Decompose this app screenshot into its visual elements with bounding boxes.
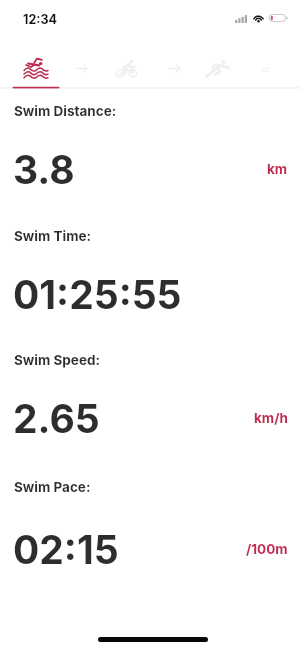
staticText: km/h (254, 410, 288, 426)
staticText: 3.8 (13, 146, 75, 193)
staticText: 01:25:55 (13, 271, 182, 318)
staticText: 2.65 (13, 395, 100, 442)
staticText: Swim Speed: (14, 352, 100, 368)
staticText: Swim Distance: (14, 103, 117, 119)
staticText: 12:34 (23, 12, 57, 27)
button[interactable]: Run (193, 45, 242, 92)
button[interactable]: Swim (12, 43, 60, 92)
staticText: /100m (246, 541, 288, 557)
staticText: 02:15 (13, 526, 119, 573)
button[interactable]: Bike (103, 45, 149, 92)
staticText: Swim Time: (14, 228, 92, 244)
staticText: Swim Pace: (14, 479, 91, 495)
staticText: km (267, 161, 288, 177)
